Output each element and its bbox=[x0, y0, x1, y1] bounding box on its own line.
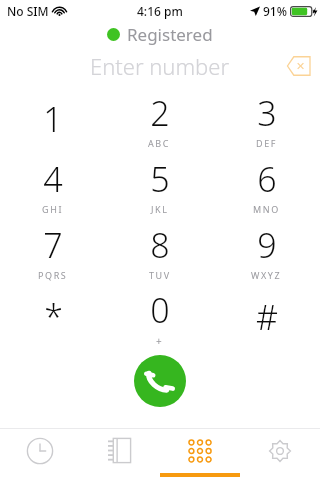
staticText: WXYZ bbox=[251, 269, 282, 281]
staticText: 3 bbox=[257, 90, 277, 136]
staticText: Enter number bbox=[90, 51, 230, 81]
button[interactable]: 7 bbox=[0, 218, 106, 284]
staticText: No SIM bbox=[7, 3, 49, 19]
button[interactable]: Delete bbox=[286, 55, 312, 77]
staticText: 2 bbox=[150, 90, 170, 136]
staticText: GHI bbox=[42, 203, 64, 215]
staticText: 6 bbox=[257, 156, 277, 202]
button[interactable]: # bbox=[213, 284, 320, 350]
staticText: 9 bbox=[257, 222, 277, 268]
button[interactable]: Keypad bbox=[160, 429, 240, 480]
staticText: ABC bbox=[148, 137, 171, 149]
button[interactable]: 4 bbox=[0, 152, 106, 218]
staticText: 1 bbox=[43, 96, 63, 142]
button[interactable]: 2 bbox=[106, 86, 213, 152]
staticText: 4 bbox=[43, 156, 63, 202]
button[interactable]: 6 bbox=[213, 152, 320, 218]
button[interactable]: 9 bbox=[213, 218, 320, 284]
staticText: + bbox=[156, 334, 164, 348]
button[interactable]: 5 bbox=[106, 152, 213, 218]
button[interactable]: Recents bbox=[0, 429, 80, 480]
staticText: 91% bbox=[263, 3, 287, 19]
button[interactable]: Contacts bbox=[80, 429, 160, 480]
staticText: 7 bbox=[43, 222, 63, 268]
staticText: Registered bbox=[127, 23, 213, 46]
staticText: PQRS bbox=[38, 269, 68, 281]
staticText: 0 bbox=[150, 287, 170, 333]
staticText: * bbox=[44, 294, 63, 340]
staticText: TUV bbox=[149, 269, 171, 281]
button[interactable]: 8 bbox=[106, 218, 213, 284]
staticText: 5 bbox=[150, 156, 170, 202]
button[interactable]: 3 bbox=[213, 86, 320, 152]
button[interactable]: 0 bbox=[106, 284, 213, 350]
staticText: MNO bbox=[253, 203, 280, 215]
button[interactable]: Call bbox=[134, 355, 186, 407]
staticText: 4:16 pm bbox=[137, 3, 183, 19]
staticText: DEF bbox=[256, 137, 278, 149]
button[interactable]: 1 bbox=[0, 86, 106, 152]
staticText: JKL bbox=[151, 203, 169, 215]
button[interactable]: Settings bbox=[240, 429, 320, 480]
staticText: # bbox=[256, 294, 278, 340]
button[interactable]: * bbox=[0, 284, 106, 350]
staticText: 8 bbox=[150, 222, 170, 268]
